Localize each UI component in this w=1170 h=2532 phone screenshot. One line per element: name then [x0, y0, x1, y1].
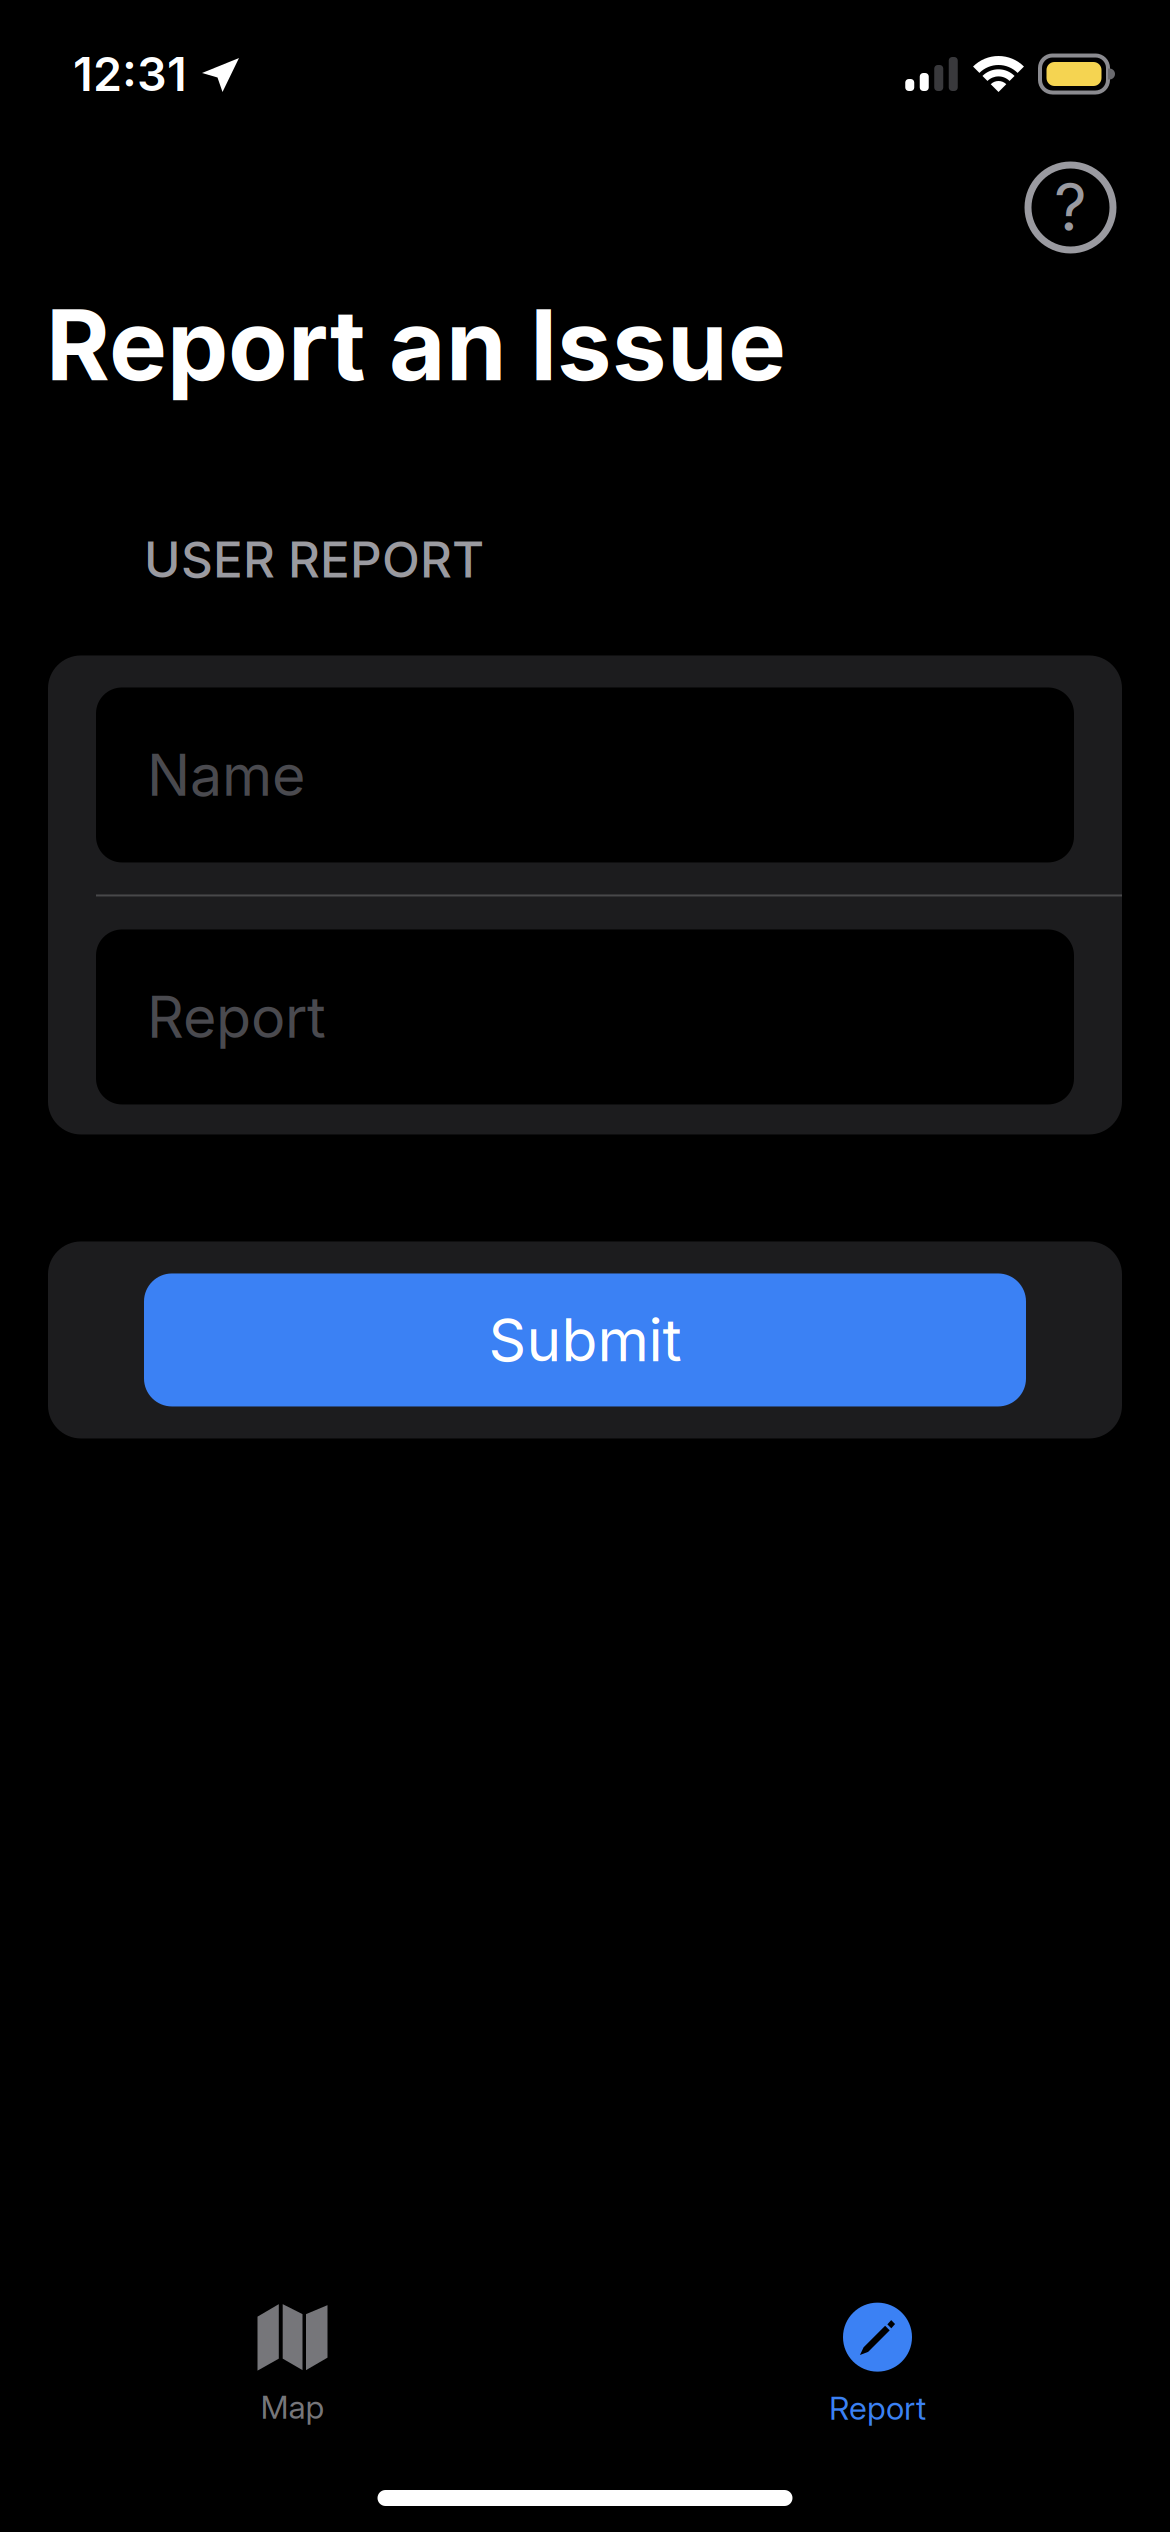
textField[interactable]: Report: [96, 929, 1074, 1104]
button[interactable]: Help: [1012, 149, 1129, 266]
button[interactable]: Submit: [48, 1241, 1122, 1438]
staticText: 12:31: [73, 46, 187, 102]
staticText: Report: [147, 982, 326, 1052]
staticText: Report: [829, 2389, 926, 2427]
staticText: Report an Issue: [46, 286, 786, 404]
button[interactable]: Report: [585, 2303, 1170, 2427]
button[interactable]: Report: [96, 929, 1074, 1104]
textField[interactable]: Name: [96, 687, 1074, 862]
button[interactable]: Name: [96, 687, 1074, 862]
button[interactable]: Map: [0, 2304, 585, 2426]
staticText: Name: [147, 740, 305, 810]
staticText: USER REPORT: [144, 530, 484, 589]
staticText: Submit: [488, 1304, 681, 1375]
staticText: ?: [1054, 169, 1087, 246]
staticText: Map: [260, 2388, 324, 2426]
